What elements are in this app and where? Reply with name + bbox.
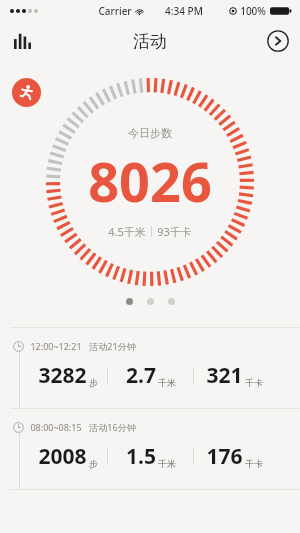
staticText: 321: [206, 361, 243, 390]
staticText: 千米: [158, 377, 176, 388]
staticText: 3282: [38, 361, 87, 390]
staticText: 千米: [158, 458, 176, 469]
staticText: 今日步数: [128, 126, 172, 140]
staticText: 93千卡: [157, 224, 192, 239]
staticText: 千卡: [245, 458, 263, 469]
staticText: 100%: [240, 4, 266, 18]
staticText: 2008: [38, 442, 87, 471]
button[interactable]: 08:00~08:15: [0, 409, 300, 489]
staticText: 千卡: [245, 377, 263, 388]
button[interactable]: 12:00~12:21: [0, 328, 300, 408]
staticText: 步: [89, 458, 98, 469]
staticText: 176: [206, 442, 243, 471]
staticText: 4.5千米: [108, 224, 146, 239]
button[interactable]: 统计图表: [0, 22, 44, 60]
staticText: 步: [89, 377, 98, 388]
staticText: Carrier: [98, 4, 132, 18]
button[interactable]: 页面 1: [126, 298, 133, 305]
staticText: 1.5: [126, 442, 156, 471]
button[interactable]: 页面 2: [147, 298, 154, 305]
button[interactable]: 页面 3: [168, 298, 175, 305]
staticText: 4:34 PM: [165, 4, 203, 18]
button[interactable]: 下一步: [256, 22, 300, 60]
staticText: 活动: [133, 31, 167, 52]
staticText: 2.7: [126, 361, 156, 390]
staticText: 8026: [88, 144, 212, 218]
staticText: 08:00~08:15: [30, 421, 82, 433]
staticText: 活动16分钟: [89, 421, 136, 433]
staticText: 12:00~12:21: [30, 340, 82, 352]
button[interactable]: 跑步: [12, 78, 41, 107]
staticText: 活动21分钟: [89, 340, 136, 352]
